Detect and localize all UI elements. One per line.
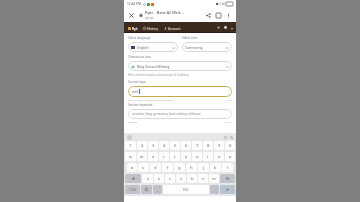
button[interactable]: More [229,25,235,31]
button[interactable]: ?123 [125,185,140,194]
button[interactable]: v [176,174,186,183]
button[interactable]: 4 [159,141,169,150]
button[interactable]: 8 [203,141,213,150]
staticText: o [218,154,221,160]
staticText: y [185,154,188,160]
button[interactable]: u [192,152,202,161]
button[interactable]: 0 [225,141,235,150]
staticText: 1 [129,143,132,149]
staticText: 4/70 [227,98,232,101]
staticText: t [174,154,176,160]
button[interactable]: Close [127,11,136,20]
button[interactable]: g [174,163,185,172]
button[interactable]: Space [163,185,209,194]
button[interactable]: j [198,163,209,172]
button[interactable]: Help [222,24,229,31]
button[interactable]: Theme [215,24,222,31]
button[interactable]: i [203,152,213,161]
staticText: Section keywords [128,103,153,107]
button[interactable]: m [209,174,219,183]
button[interactable]: h [186,163,197,172]
staticText: p [229,154,232,160]
button[interactable]: Clipboard [127,135,131,139]
button[interactable]: 7 [192,141,202,150]
button[interactable]: Share [204,11,213,20]
button[interactable]: Blog Section Writing [128,61,232,71]
staticText: v [180,176,183,182]
button[interactable]: 3 [148,141,158,150]
staticText: b [191,176,194,182]
staticText: m [212,176,216,182]
button[interactable]: More options [224,11,233,20]
staticText: Rytr - Best AI Writ… [145,10,184,16]
button[interactable]: Account [163,26,182,30]
staticText: n [202,176,205,182]
button[interactable]: Emoji [141,185,152,194]
staticText: 6 [185,143,188,149]
staticText: 0/120 [225,120,232,123]
staticText: 12:44 PM [127,2,141,6]
staticText: Choose use case [128,55,152,59]
staticText: Ryt [132,26,138,30]
button[interactable]: Emoji [223,135,227,139]
button[interactable]: q [125,152,136,161]
staticText: z [147,176,149,182]
button[interactable]: f [162,163,173,172]
button[interactable]: History [142,26,160,30]
button[interactable]: . [210,185,219,194]
button[interactable]: e [148,152,158,161]
button[interactable]: p [225,152,235,161]
staticText: 7 [196,143,199,149]
button[interactable]: Enter [220,185,235,194]
button[interactable]: Shift [125,174,141,183]
staticText: u [196,154,199,160]
staticText: > [231,26,234,31]
button[interactable]: Ryt [127,26,139,30]
button[interactable]: 5 [170,141,180,150]
button[interactable]: o [214,152,224,161]
button[interactable]: 9 [214,141,224,150]
staticText: , [157,188,158,192]
staticText: Account [168,26,181,30]
staticText: 5 [174,143,177,149]
button[interactable]: writ [128,86,232,97]
staticText: writ [132,89,139,94]
button[interactable]: l [222,163,233,172]
button[interactable]: n [198,174,208,183]
button[interactable]: z [142,174,153,183]
staticText: For best results provide detailed contex… [128,98,174,101]
staticText: 0 [229,143,232,149]
staticText: 4 [163,143,166,149]
button[interactable]: ai writer, blog generator, best writing … [128,109,232,119]
button[interactable]: Search [229,135,233,139]
staticText: Select language [128,36,151,40]
button[interactable]: k [210,163,221,172]
button[interactable]: t [170,152,180,161]
button[interactable]: b [187,174,197,183]
button[interactable]: 1 [125,141,136,150]
button[interactable]: c [165,174,175,183]
staticText: l [227,165,229,171]
button[interactable]: r [159,152,169,161]
staticText: h [190,165,193,171]
button[interactable]: Tabs [214,11,223,20]
button[interactable]: a [127,163,137,172]
button[interactable]: w [137,152,147,161]
button[interactable]: , [153,185,162,194]
button[interactable]: d [150,163,161,172]
button[interactable]: 2 [137,141,147,150]
button[interactable]: y [181,152,191,161]
button[interactable]: English [128,42,178,52]
staticText: x [158,176,161,182]
button[interactable]: Convincing [182,42,232,52]
staticText: f [167,165,169,171]
staticText: ?123 [129,188,136,192]
button[interactable]: Backspace [220,174,235,183]
staticText: 8 [207,143,210,149]
button[interactable]: x [154,174,164,183]
staticText: d [154,165,157,171]
staticText: c [169,176,172,182]
button[interactable]: s [138,163,149,172]
staticText: 9 [218,143,221,149]
button[interactable]: 6 [181,141,191,150]
